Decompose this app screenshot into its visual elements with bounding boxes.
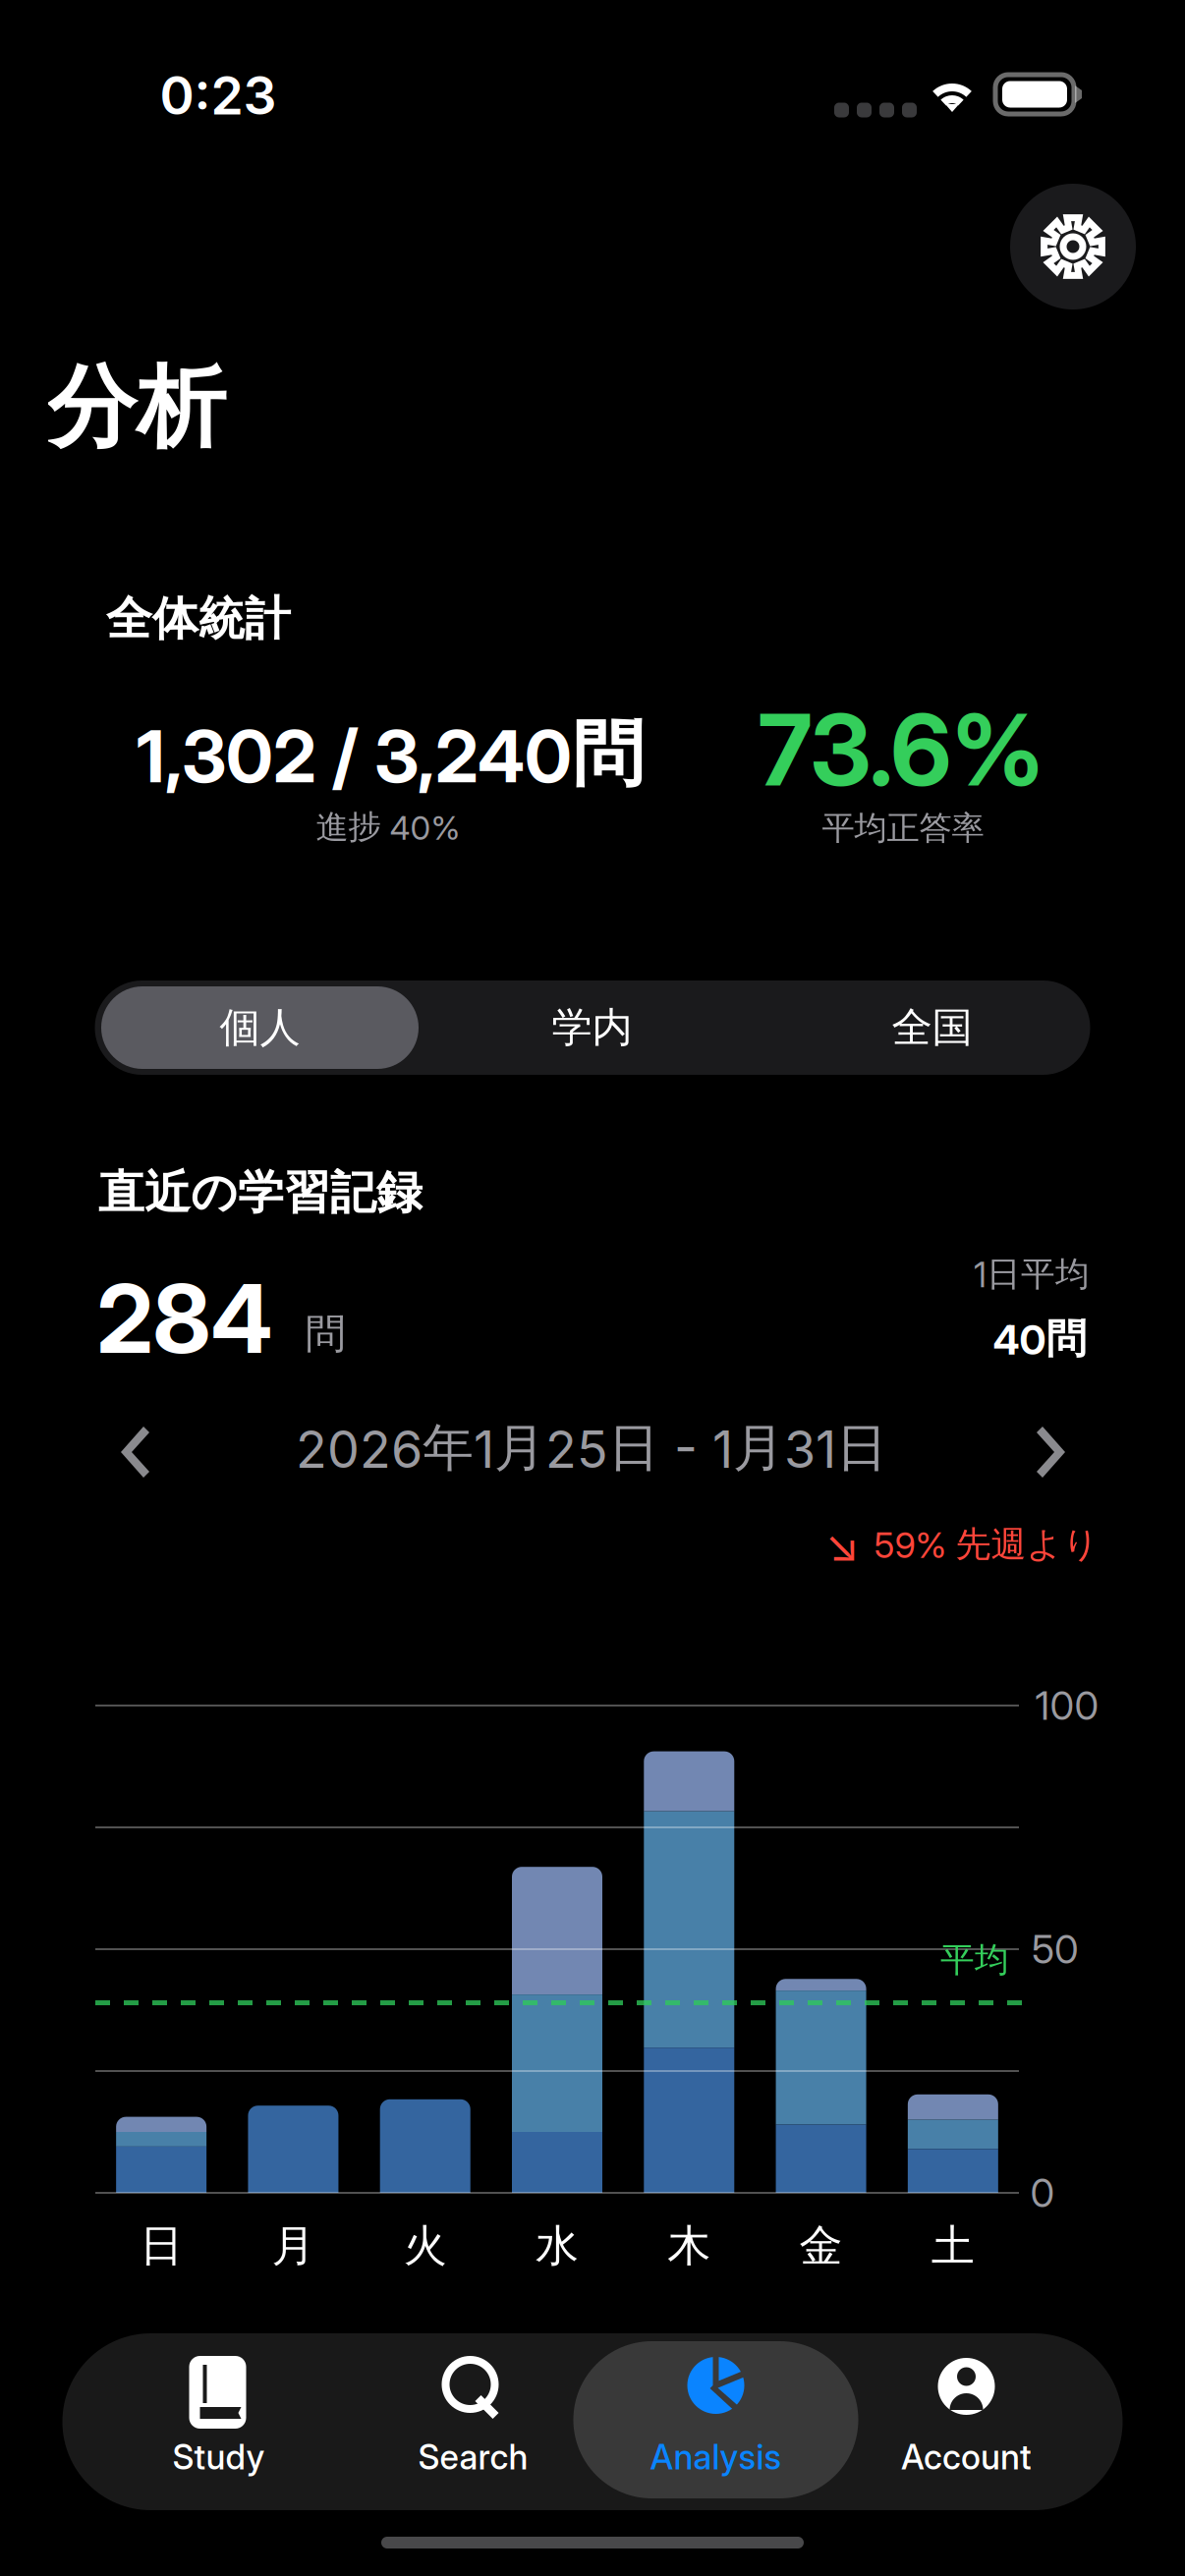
button[interactable]: Account [824, 2341, 1109, 2498]
button[interactable]: Search [331, 2341, 616, 2498]
staticText: 40問 [993, 1314, 1086, 1365]
staticText: Account [901, 2436, 1032, 2478]
staticText: 学内 [552, 1002, 632, 1053]
button[interactable]: 全国 [770, 980, 1094, 1075]
staticText: 水 [536, 2219, 579, 2273]
button[interactable]: 学内 [430, 980, 754, 1075]
button[interactable]: Next week [1032, 1423, 1071, 1482]
staticText: 0:23 [160, 64, 277, 127]
staticText: 問 [305, 1309, 345, 1360]
staticText: 直近の学習記録 [98, 1164, 423, 1222]
staticText: 平均正答率 [822, 808, 984, 849]
button[interactable]: Analysis [573, 2341, 858, 2498]
staticText: 日 [140, 2219, 183, 2273]
staticText: 金 [799, 2219, 843, 2273]
staticText: 月 [272, 2219, 315, 2273]
button[interactable]: Settings [1010, 184, 1136, 309]
staticText: Analysis [650, 2436, 782, 2478]
staticText: 進捗 40% [316, 807, 460, 848]
button[interactable]: Previous week [116, 1423, 155, 1482]
button[interactable]: Study [76, 2341, 361, 2498]
button[interactable]: 個人 [101, 986, 419, 1069]
staticText: 全体統計 [106, 590, 291, 648]
staticText: 木 [667, 2219, 711, 2273]
staticText: 100 [1035, 1682, 1099, 1729]
staticText: 1日平均 [974, 1253, 1090, 1296]
staticText: 火 [404, 2219, 447, 2273]
staticText: Study [172, 2436, 265, 2478]
staticText: 平均 [940, 1938, 1009, 1981]
staticText: 0 [1030, 2169, 1055, 2217]
staticText: 土 [931, 2219, 975, 2273]
staticText: 284 [97, 1261, 273, 1376]
staticText: 59% 先週より [874, 1522, 1099, 1567]
staticText: 50 [1032, 1925, 1079, 1973]
staticText: 1,302 / 3,240問 [137, 709, 644, 800]
staticText: ↘ [825, 1518, 859, 1571]
staticText: 分析 [47, 352, 226, 464]
staticText: 個人 [220, 1002, 300, 1053]
staticText: Search [418, 2436, 528, 2478]
staticText: 73.6% [758, 690, 1044, 809]
staticText: 全国 [892, 1002, 972, 1053]
staticText: 2026年1月25日 - 1月31日 [296, 1416, 887, 1480]
